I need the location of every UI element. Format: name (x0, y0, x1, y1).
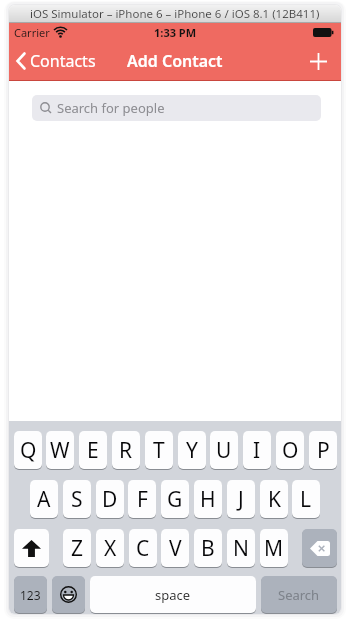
staticText: space (155, 586, 191, 604)
staticText: 123 (20, 587, 41, 603)
staticText: 1:33 PM (154, 25, 197, 40)
button[interactable]: Search for people (32, 95, 321, 121)
button[interactable]: Contacts (15, 50, 96, 72)
staticText: G (167, 485, 183, 514)
button[interactable]: Y (178, 431, 206, 469)
staticText: Search for people (57, 99, 165, 117)
staticText: E (87, 436, 99, 465)
staticText: iOS Simulator – iPhone 6 – iPhone 6 / iO… (30, 6, 320, 22)
button[interactable]: S (63, 480, 91, 518)
button[interactable]: I (243, 431, 271, 469)
staticText: Q (20, 436, 37, 465)
staticText: U (216, 436, 232, 465)
staticText: R (119, 436, 133, 465)
button[interactable]: space (90, 576, 256, 613)
staticText: W (50, 436, 70, 465)
button[interactable] (305, 48, 331, 74)
button[interactable] (52, 576, 85, 613)
staticText: S (71, 485, 83, 514)
button[interactable]: P (309, 431, 337, 469)
staticText: D (102, 485, 118, 514)
staticText: H (200, 485, 216, 514)
staticText: Y (186, 436, 198, 465)
button[interactable]: A (30, 480, 58, 518)
staticText: K (268, 485, 281, 514)
button[interactable]: R (112, 431, 140, 469)
staticText: Add Contact (127, 50, 223, 72)
staticText: Contacts (30, 50, 96, 72)
staticText: J (238, 485, 244, 514)
button[interactable]: J (227, 480, 255, 518)
staticText: N (233, 534, 249, 563)
button[interactable]: Search (261, 576, 337, 613)
button[interactable]: V (161, 529, 189, 567)
button[interactable]: X (96, 529, 124, 567)
staticText: F (137, 485, 148, 514)
staticText: A (37, 485, 51, 514)
button[interactable]: U (210, 431, 238, 469)
button[interactable]: D (96, 480, 124, 518)
button[interactable] (302, 529, 337, 567)
staticText: O (282, 436, 299, 465)
button[interactable]: T (145, 431, 173, 469)
button[interactable]: C (129, 529, 157, 567)
button[interactable]: M (260, 529, 288, 567)
button[interactable]: K (260, 480, 288, 518)
staticText: I (253, 436, 261, 465)
staticText: C (136, 534, 150, 563)
staticText: Z (71, 534, 84, 563)
staticText: B (201, 534, 215, 563)
button[interactable]: N (227, 529, 255, 567)
staticText: M (264, 534, 284, 563)
button[interactable]: O (276, 431, 304, 469)
button[interactable]: H (194, 480, 222, 518)
button[interactable]: Q (14, 431, 42, 469)
button[interactable]: Z (63, 529, 91, 567)
staticText: P (317, 436, 330, 465)
staticText: X (104, 534, 117, 563)
button[interactable]: 123 (14, 576, 47, 613)
button[interactable]: E (79, 431, 107, 469)
button[interactable] (14, 529, 49, 567)
button[interactable]: W (46, 431, 74, 469)
staticText: L (300, 485, 312, 514)
button[interactable]: B (194, 529, 222, 567)
staticText: Carrier (14, 25, 50, 40)
button[interactable]: F (128, 480, 156, 518)
staticText: V (169, 534, 182, 563)
button[interactable]: L (292, 480, 320, 518)
staticText: Search (278, 586, 320, 604)
button[interactable]: G (161, 480, 189, 518)
staticText: T (153, 436, 165, 465)
